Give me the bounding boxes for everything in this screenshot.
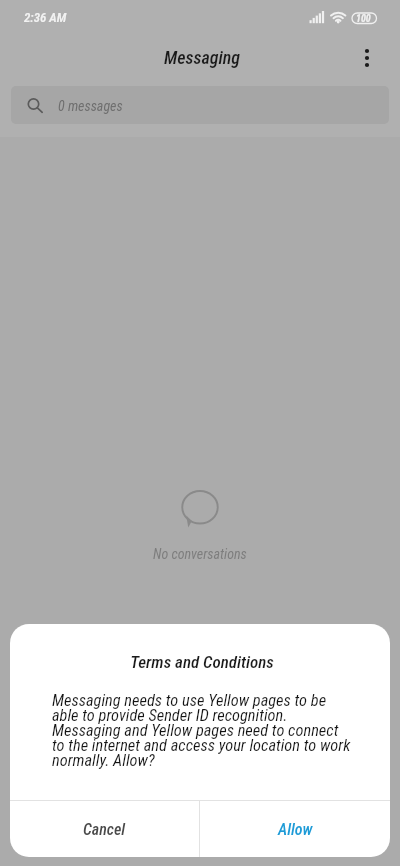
staticText: Cancel bbox=[83, 820, 126, 839]
button[interactable]: 0 messages bbox=[11, 86, 389, 124]
staticText: 2:36 AM bbox=[24, 10, 67, 25]
staticText: Terms and Conditions bbox=[12, 652, 390, 672]
staticText: 0 messages bbox=[58, 98, 123, 114]
staticText: 100 bbox=[356, 13, 371, 25]
staticText: Messaging bbox=[164, 47, 240, 68]
staticText: Allow bbox=[278, 820, 313, 839]
staticText: Messaging needs to use Yellow pages to b… bbox=[52, 691, 351, 770]
button[interactable]: Cancel bbox=[10, 801, 199, 857]
button[interactable]: More options bbox=[347, 38, 387, 78]
button[interactable]: Allow bbox=[200, 801, 390, 857]
staticText: No conversations bbox=[153, 546, 247, 562]
